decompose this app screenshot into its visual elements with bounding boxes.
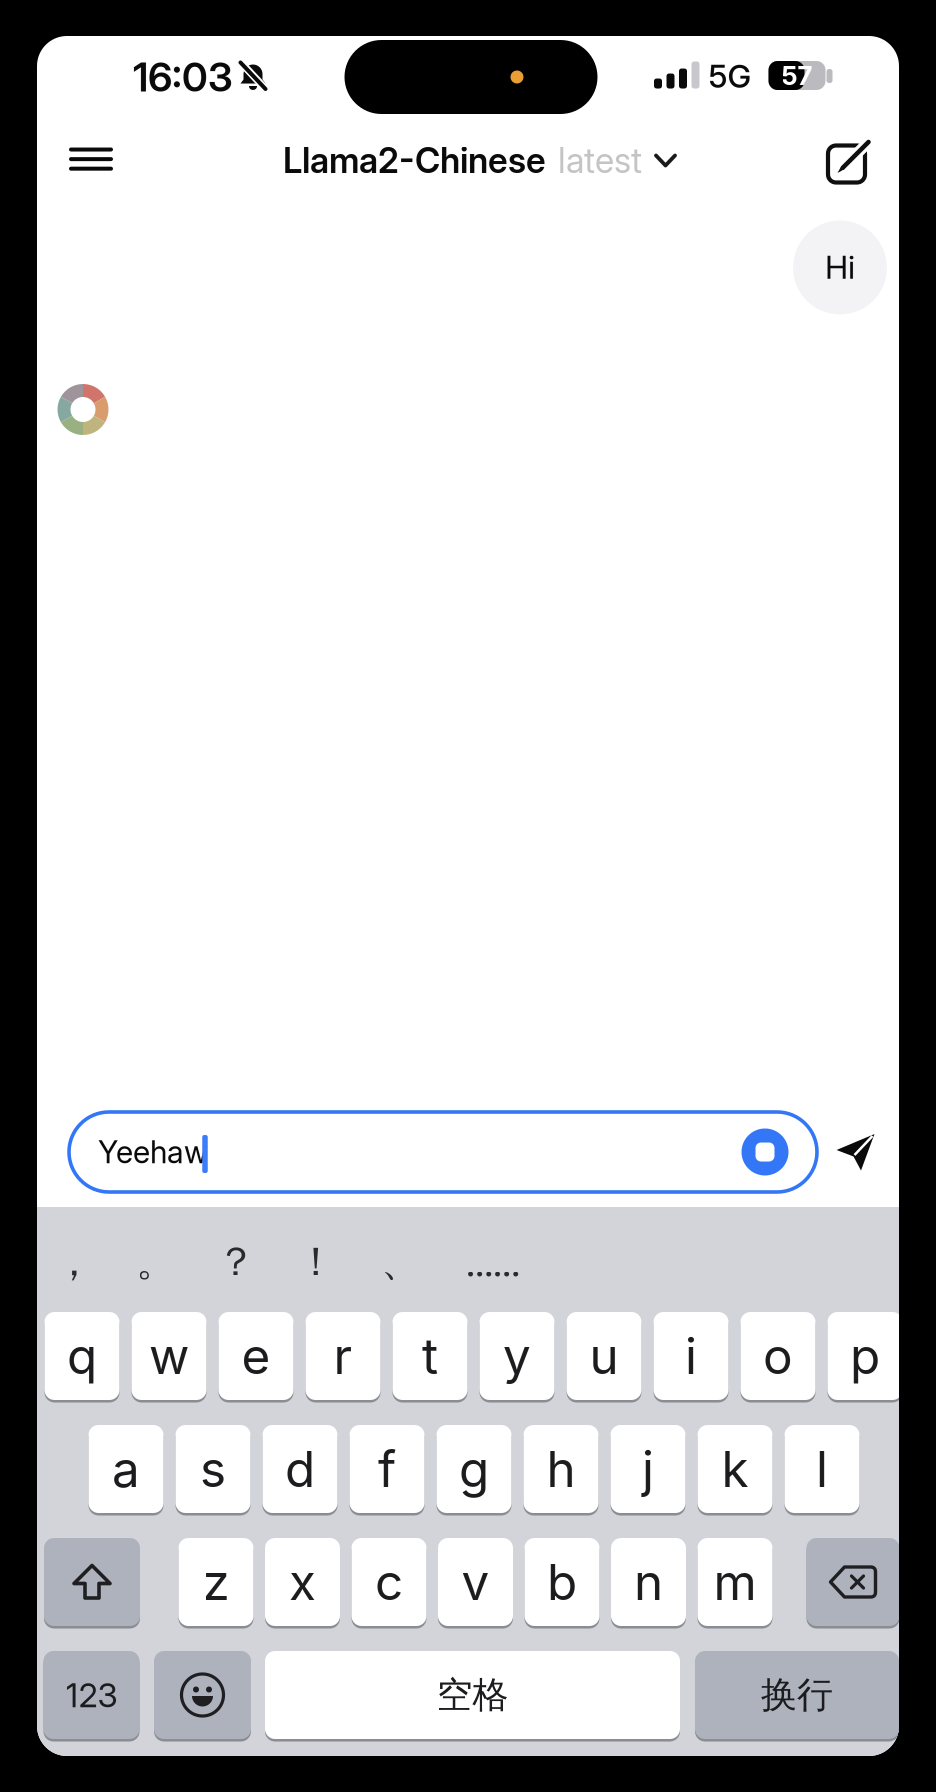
button[interactable]	[741, 1128, 788, 1175]
button[interactable]: s	[175, 1423, 250, 1514]
button[interactable]: 。	[136, 1237, 176, 1287]
staticText: 5G	[708, 57, 751, 95]
button[interactable]: v	[438, 1536, 513, 1627]
button[interactable]: u	[566, 1310, 641, 1401]
button[interactable]: q	[44, 1310, 119, 1401]
staticText: k	[721, 1439, 748, 1499]
staticText: i	[685, 1326, 697, 1386]
staticText: 换行	[761, 1672, 833, 1718]
staticText: Hi	[825, 248, 855, 286]
staticText: p	[850, 1326, 880, 1386]
staticText: ……	[466, 1238, 520, 1286]
button[interactable]: k	[697, 1423, 772, 1514]
staticText: t	[422, 1326, 438, 1386]
staticText: x	[289, 1552, 316, 1612]
staticText: q	[67, 1326, 97, 1386]
button[interactable]: w	[131, 1310, 206, 1401]
button[interactable]	[833, 1130, 877, 1174]
staticText: w	[149, 1326, 189, 1386]
staticText: 空格	[436, 1672, 508, 1718]
button[interactable]: ！	[296, 1237, 336, 1287]
staticText: g	[459, 1439, 489, 1499]
staticText: latest	[558, 139, 642, 181]
button[interactable]: y	[479, 1310, 554, 1401]
button[interactable]: t	[392, 1310, 467, 1401]
staticText: n	[634, 1552, 663, 1612]
button[interactable]: 空格	[265, 1649, 680, 1740]
button[interactable]: h	[523, 1423, 598, 1514]
button[interactable]: z	[178, 1536, 253, 1627]
staticText: v	[461, 1552, 489, 1612]
button[interactable]: Llama2-Chinese	[283, 139, 677, 181]
button[interactable]: o	[740, 1310, 815, 1401]
button[interactable]: f	[349, 1423, 424, 1514]
staticText: 123	[65, 1675, 117, 1715]
staticText: a	[112, 1439, 140, 1499]
button[interactable]: ……	[466, 1238, 520, 1286]
staticText: 、	[381, 1237, 421, 1287]
staticText: 57	[781, 60, 812, 91]
button[interactable]: l	[784, 1423, 859, 1514]
button[interactable]: ？	[216, 1237, 256, 1287]
staticText: u	[589, 1326, 618, 1386]
staticText: b	[547, 1552, 577, 1612]
staticText: s	[200, 1439, 226, 1499]
button[interactable]: 123	[43, 1649, 139, 1740]
staticText: y	[503, 1326, 531, 1386]
button[interactable]: p	[827, 1310, 902, 1401]
staticText: ，	[54, 1237, 94, 1287]
staticText: Llama2-Chinese	[283, 139, 546, 181]
staticText: ？	[216, 1237, 256, 1287]
button[interactable]	[806, 1536, 899, 1627]
staticText: f	[378, 1439, 396, 1499]
button[interactable]: 换行	[695, 1649, 899, 1740]
staticText: d	[285, 1439, 315, 1499]
staticText: m	[713, 1552, 756, 1612]
staticText: c	[375, 1552, 403, 1612]
staticText: h	[546, 1439, 575, 1499]
button[interactable]: m	[697, 1536, 772, 1627]
button[interactable]: x	[265, 1536, 340, 1627]
button[interactable]: c	[351, 1536, 426, 1627]
button[interactable]: 、	[381, 1237, 421, 1287]
button[interactable]	[154, 1649, 251, 1740]
button[interactable]: j	[610, 1423, 685, 1514]
button[interactable]	[68, 144, 114, 173]
button[interactable]: d	[262, 1423, 337, 1514]
button[interactable]: r	[305, 1310, 380, 1401]
staticText: Yeehaw	[98, 1133, 208, 1170]
staticText: ！	[296, 1237, 336, 1287]
staticText: l	[816, 1439, 828, 1499]
button[interactable]: b	[524, 1536, 599, 1627]
button[interactable]	[44, 1536, 140, 1627]
button[interactable]: ，	[54, 1237, 94, 1287]
button[interactable]	[826, 136, 874, 184]
staticText: 16:03	[133, 53, 233, 101]
button[interactable]: n	[611, 1536, 686, 1627]
button[interactable]: a	[88, 1423, 163, 1514]
staticText: e	[241, 1326, 270, 1386]
staticText: o	[763, 1326, 793, 1386]
button[interactable]: i	[653, 1310, 728, 1401]
staticText: r	[333, 1326, 352, 1386]
staticText: j	[642, 1439, 654, 1499]
button[interactable]: g	[436, 1423, 511, 1514]
staticText: 。	[136, 1237, 176, 1287]
button[interactable]: Yeehaw	[69, 1112, 817, 1192]
button[interactable]: e	[218, 1310, 293, 1401]
staticText: z	[202, 1552, 229, 1612]
